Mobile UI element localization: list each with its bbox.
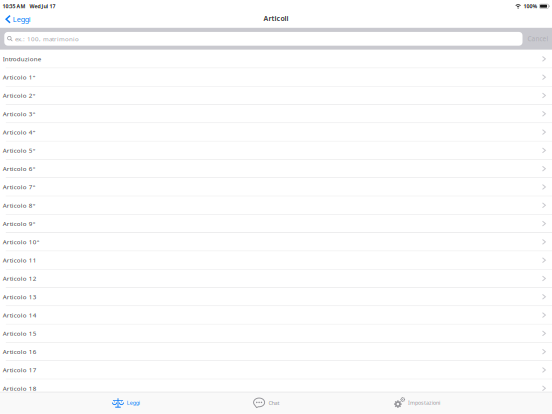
button[interactable]: Articolo 5° <box>0 141 552 160</box>
staticText: Articolo 18 <box>3 384 37 392</box>
button[interactable]: Articolo 16 <box>0 343 552 361</box>
button[interactable]: Articolo 14 <box>0 306 552 324</box>
button[interactable]: Articolo 1° <box>0 68 552 87</box>
staticText: Articolo 8° <box>3 201 36 209</box>
staticText: Articolo 12 <box>3 274 37 283</box>
staticText: Articolo 13 <box>3 293 37 301</box>
button[interactable]: Articolo 17 <box>0 361 552 379</box>
staticText: Wed Jul 17 <box>29 3 55 10</box>
staticText: Articolo 5° <box>3 146 36 155</box>
button[interactable]: Articolo 15 <box>0 324 552 343</box>
button[interactable]: Articolo 18 <box>0 379 552 398</box>
button[interactable]: Articolo 12 <box>0 270 552 288</box>
staticText: Articolo 15 <box>3 329 37 338</box>
staticText: ex.: 100, matrimonio <box>15 35 79 43</box>
staticText: Articolo 6° <box>3 164 36 173</box>
button[interactable]: Articolo 6° <box>0 160 552 178</box>
button[interactable]: Leggi <box>0 14 35 26</box>
staticText: Impostazioni <box>408 399 440 406</box>
button[interactable]: Articolo 7° <box>0 178 552 196</box>
staticText: Leggi <box>13 14 31 24</box>
button[interactable]: Articolo 13 <box>0 288 552 306</box>
button[interactable]: Articolo 19 <box>0 398 552 414</box>
button[interactable]: Articolo 3° <box>0 105 552 123</box>
staticText: Articolo 16 <box>3 347 37 356</box>
staticText: 10:35 AM <box>2 3 25 10</box>
staticText: Articolo 3° <box>3 110 36 118</box>
staticText: Leggi <box>127 399 140 406</box>
staticText: Articolo 7° <box>3 183 36 191</box>
staticText: Articolo 10° <box>3 238 40 246</box>
button[interactable]: Articolo 9° <box>0 215 552 233</box>
button[interactable]: Chat <box>253 392 279 413</box>
button[interactable]: Articolo 11 <box>0 251 552 270</box>
staticText: Articolo 1° <box>3 73 36 81</box>
button[interactable]: Introduzione <box>0 50 552 68</box>
staticText: Articolo 9° <box>3 219 36 228</box>
staticText: Articolo 17 <box>3 366 37 374</box>
button[interactable]: Articolo 10° <box>0 233 552 251</box>
staticText: 100% <box>523 3 537 10</box>
staticText: Articolo 4° <box>3 128 36 136</box>
staticText: Articoli <box>263 14 288 23</box>
staticText: Introduzione <box>3 55 41 63</box>
staticText: Chat <box>268 399 279 406</box>
button[interactable]: Leggi <box>112 392 140 413</box>
staticText: Articolo 14 <box>3 311 37 319</box>
button[interactable]: Impostazioni <box>392 392 440 413</box>
button[interactable]: Articolo 8° <box>0 196 552 215</box>
button[interactable]: Cancel <box>522 32 549 46</box>
staticText: Articolo 11 <box>3 256 37 264</box>
button[interactable]: Articolo 2° <box>0 87 552 105</box>
button[interactable]: Articolo 4° <box>0 123 552 141</box>
staticText: Articolo 2° <box>3 91 36 100</box>
staticText: Cancel <box>528 34 549 43</box>
